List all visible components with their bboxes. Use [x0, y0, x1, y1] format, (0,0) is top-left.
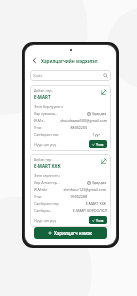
staticText: 99002288	[70, 194, 87, 199]
button[interactable]: Хайх	[30, 70, 111, 81]
staticText: E-MART ХХК	[34, 163, 61, 169]
staticText: Үзэх	[96, 142, 104, 147]
staticText: Эзэн борлуулагч	[34, 104, 63, 109]
staticText: Харилцагч нэмэх	[54, 230, 93, 236]
button[interactable]: Харилцагч нэмэх	[34, 227, 107, 239]
button[interactable]: Back	[30, 56, 39, 65]
staticText: Утас	[34, 194, 42, 199]
staticText: Нүүр цэс рүү	[34, 218, 56, 223]
staticText: Салбарын нэр	[34, 208, 53, 213]
staticText: Хар хуваалцагчид	[34, 111, 60, 116]
staticText: И-Мэйл	[34, 187, 48, 192]
staticText: Албан нэр:	[34, 157, 53, 162]
staticText: E-MART	[34, 94, 51, 100]
staticText: Албан нэр:	[34, 88, 53, 93]
staticText: Харилцагчийн мэдээлэл	[41, 58, 98, 64]
button[interactable]: Албан нэр:	[30, 85, 111, 151]
staticText: Салбарын тоо	[34, 132, 59, 137]
button[interactable]: Edit customer	[100, 88, 107, 95]
button[interactable]: Edit customer	[100, 157, 107, 164]
staticText: 88002200	[70, 125, 87, 130]
staticText: Удирдах	[92, 111, 107, 116]
staticText: Нүүр цэс рүү	[34, 142, 56, 147]
staticText: shuudaanai500@gmail.com	[60, 118, 107, 123]
button[interactable]: Үзэх	[89, 140, 107, 148]
button[interactable]: Албан нэр:	[30, 154, 111, 227]
staticText: elenhuur123@gmail.com	[63, 187, 106, 192]
staticText: И-Мэйл	[34, 118, 47, 123]
staticText: E-MART ХОРООЛОЛ	[73, 208, 107, 213]
staticText: Салбарын нэр	[34, 201, 59, 206]
staticText: Үзэх	[96, 218, 104, 223]
staticText: Хайх	[33, 73, 43, 79]
staticText: E-MART ХХК	[85, 201, 106, 206]
staticText: 1ууг	[92, 132, 100, 137]
button[interactable]: Үзэх	[89, 216, 107, 224]
staticText: Утас	[34, 125, 42, 130]
staticText: Хар Алтангэрэл	[34, 180, 60, 185]
staticText: Эзэн хэрэглэгч	[34, 173, 60, 178]
staticText: Удирдах	[92, 180, 107, 185]
